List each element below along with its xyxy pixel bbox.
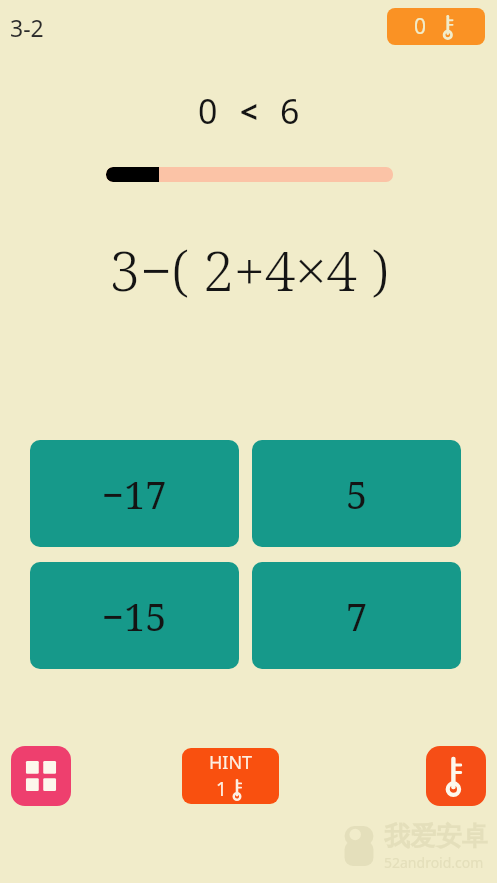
staticText: 7 [346,590,368,642]
staticText: −17 [102,468,167,520]
staticText: 52android.com [384,853,484,872]
button[interactable]: Levels [11,746,71,806]
button[interactable]: −15 [30,562,239,669]
staticText: −15 [102,590,167,642]
staticText: 0 [414,12,427,41]
staticText: 3-2 [10,12,44,43]
button[interactable]: −17 [30,440,239,547]
staticText: 0 [198,88,218,134]
button[interactable]: HINT [182,748,279,804]
button[interactable]: 7 [252,562,461,669]
button[interactable]: 5 [252,440,461,547]
staticText: 我爱安卓 [384,820,488,853]
staticText: HINT [209,750,253,775]
staticText: 5 [346,468,368,520]
button[interactable]: Buy keys [426,746,486,806]
staticText: 1 [216,776,227,802]
staticText: < [240,90,258,132]
staticText: 6 [280,88,300,134]
button[interactable]: Keys: 0 [387,8,485,45]
staticText: 3−( 2+4×4 ) [109,232,389,307]
